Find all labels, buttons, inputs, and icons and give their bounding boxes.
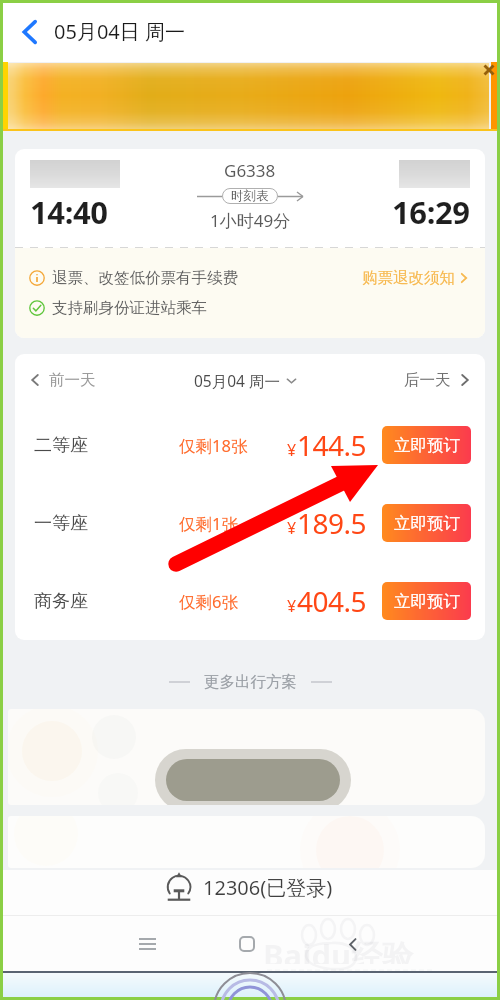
staticText: 立即预订: [394, 591, 460, 612]
staticText: 仅剩1张: [179, 512, 238, 535]
staticText: 189.5: [297, 504, 367, 542]
button[interactable]: [8, 709, 485, 805]
staticText: 05月04日 周一: [54, 18, 185, 45]
button[interactable]: Home: [221, 918, 273, 970]
button[interactable]: 购票退改须知: [362, 268, 471, 288]
button[interactable]: 05月04 周一: [194, 370, 297, 391]
staticText: ¥: [287, 517, 297, 539]
staticText: 404.5: [297, 582, 367, 620]
staticText: 16:29: [392, 191, 470, 233]
button[interactable]: Close ad: [3, 62, 497, 131]
staticText: 后一天: [404, 370, 451, 390]
staticText: 05月04 周一: [194, 370, 280, 391]
staticText: 一等座: [34, 512, 88, 535]
button[interactable]: 后一天: [404, 370, 472, 390]
staticText: 时刻表: [231, 188, 269, 204]
staticText: 仅剩6张: [179, 590, 238, 613]
staticText: 退票、改签低价票有手续费: [52, 268, 238, 288]
staticText: 前一天: [49, 370, 96, 390]
staticText: 立即预订: [394, 435, 460, 456]
button[interactable]: 立即预订: [382, 426, 471, 464]
staticText: 12306(已登录): [203, 874, 333, 901]
staticText: 购票退改须知: [362, 268, 455, 288]
button[interactable]: 前一天: [28, 370, 96, 390]
staticText: G6338: [224, 159, 276, 182]
staticText: ¥: [287, 595, 297, 617]
staticText: 1小时49分: [210, 209, 291, 232]
button[interactable]: 一等座: [15, 484, 485, 562]
button[interactable]: 时刻表: [231, 188, 269, 204]
button[interactable]: 立即预订: [382, 582, 471, 620]
staticText: 立即预订: [394, 513, 460, 534]
button[interactable]: 立即预订: [382, 504, 471, 542]
staticText: 144.5: [297, 426, 367, 464]
button[interactable]: Close ad: [481, 62, 497, 78]
staticText: 支持刷身份证进站乘车: [52, 298, 207, 318]
button[interactable]: 二等座: [15, 406, 485, 484]
button[interactable]: [8, 816, 485, 868]
button[interactable]: Back: [10, 12, 50, 52]
staticText: 14:40: [30, 191, 108, 233]
staticText: ¥: [287, 439, 297, 461]
staticText: 仅剩18张: [179, 434, 248, 457]
staticText: Baidu经验: [263, 934, 414, 964]
staticText: 商务座: [34, 590, 88, 613]
button[interactable]: Back: [326, 918, 378, 970]
staticText: 二等座: [34, 434, 88, 457]
button[interactable]: Recent apps: [121, 918, 173, 970]
button[interactable]: 商务座: [15, 562, 485, 640]
staticText: 更多出行方案: [204, 672, 297, 692]
button[interactable]: 12306(已登录): [3, 870, 497, 915]
